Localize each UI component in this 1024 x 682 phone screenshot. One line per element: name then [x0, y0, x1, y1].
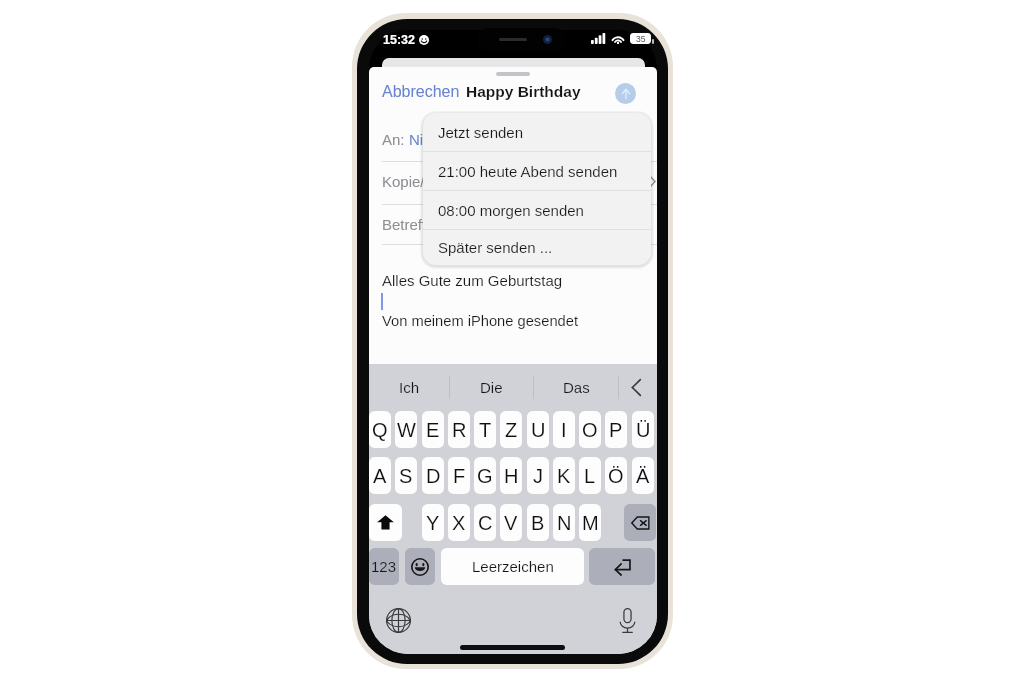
staticText: Später senden ...	[438, 239, 553, 256]
button[interactable]: Rückgängig	[619, 364, 657, 411]
button[interactable]: I	[553, 411, 575, 448]
staticText: Ich	[399, 379, 420, 396]
staticText: V	[504, 512, 518, 534]
button[interactable]: M	[579, 504, 601, 541]
staticText: Von meinem iPhone gesendet	[382, 313, 578, 329]
button[interactable]: P	[605, 411, 627, 448]
button[interactable]: G	[474, 457, 496, 494]
staticText: N	[557, 512, 572, 534]
staticText: F	[453, 465, 466, 487]
staticText: Happy Birthday	[435, 216, 538, 233]
button[interactable]: Diktieren	[614, 607, 640, 633]
staticText: H	[504, 465, 519, 487]
staticText: Happy Birthday	[466, 83, 581, 100]
staticText: I	[561, 419, 567, 441]
staticText: Jetzt senden	[438, 124, 524, 141]
button[interactable]: Ä	[632, 457, 654, 494]
button[interactable]: D	[422, 457, 444, 494]
button[interactable]: 21:00 heute Abend senden	[423, 152, 651, 190]
staticText: Z	[505, 419, 518, 441]
staticText: Y	[426, 512, 440, 534]
staticText: Ü	[636, 419, 651, 441]
button[interactable]: 08:00 morgen senden	[423, 191, 651, 229]
button[interactable]: 123	[369, 548, 399, 585]
button[interactable]: Leerzeichen	[441, 548, 584, 585]
staticText: O	[582, 419, 598, 441]
staticText: M	[582, 512, 599, 534]
button[interactable]: E	[422, 411, 444, 448]
button[interactable]: O	[579, 411, 601, 448]
button[interactable]: K	[553, 457, 575, 494]
button[interactable]: Emoji	[405, 548, 435, 585]
staticText: 123	[371, 558, 397, 575]
staticText: Das	[563, 379, 590, 396]
staticText: X	[452, 512, 466, 534]
staticText: Leerzeichen	[472, 558, 554, 575]
button[interactable]: L	[579, 457, 601, 494]
button[interactable]: Eingabetaste	[589, 548, 655, 585]
button[interactable]: H	[500, 457, 522, 494]
button[interactable]: Ö	[605, 457, 627, 494]
button[interactable]: F	[448, 457, 470, 494]
staticText: S	[399, 465, 413, 487]
staticText: Ä	[636, 465, 650, 487]
button[interactable]: B	[527, 504, 549, 541]
staticText: W	[397, 419, 416, 441]
button[interactable]: Umschalttaste	[369, 504, 402, 541]
staticText: Nils Mustermann	[409, 131, 522, 148]
button[interactable]: N	[553, 504, 575, 541]
button[interactable]: Das	[534, 364, 618, 411]
staticText: Q	[372, 419, 388, 441]
button[interactable]: Senden	[615, 83, 636, 104]
button[interactable]: U	[527, 411, 549, 448]
button[interactable]: A	[369, 457, 391, 494]
staticText: D	[426, 465, 441, 487]
staticText: A	[373, 465, 387, 487]
staticText: C	[478, 512, 493, 534]
staticText: Alles Gute zum Geburtstag	[382, 272, 563, 289]
staticText: G	[477, 465, 493, 487]
button[interactable]: X	[448, 504, 470, 541]
staticText: P	[609, 419, 623, 441]
staticText: An:	[382, 131, 409, 148]
staticText: 15:32	[383, 33, 415, 47]
button[interactable]: C	[474, 504, 496, 541]
button[interactable]: V	[500, 504, 522, 541]
staticText: R	[452, 419, 467, 441]
button[interactable]: R	[448, 411, 470, 448]
button[interactable]: Abbrechen	[382, 83, 460, 101]
button[interactable]: Ü	[632, 411, 654, 448]
button[interactable]: S	[395, 457, 417, 494]
staticText: 35	[636, 34, 646, 43]
staticText: K	[557, 465, 571, 487]
button[interactable]: Jetzt senden	[423, 113, 651, 151]
button[interactable]: Löschen	[624, 504, 656, 541]
staticText: B	[531, 512, 545, 534]
button[interactable]: Die	[450, 364, 533, 411]
button[interactable]: Z	[500, 411, 522, 448]
button[interactable]: T	[474, 411, 496, 448]
staticText: U	[531, 419, 546, 441]
staticText: Kopie/Bcc, Von:	[382, 173, 493, 190]
staticText: 08:00 morgen senden	[438, 202, 584, 219]
staticText: Die	[480, 379, 503, 396]
staticText: J	[533, 465, 543, 487]
button[interactable]: Später senden ...	[423, 230, 651, 265]
button[interactable]: Q	[369, 411, 391, 448]
staticText: L	[584, 465, 596, 487]
button[interactable]: Ich	[369, 364, 449, 411]
button[interactable]: Y	[422, 504, 444, 541]
button[interactable]: W	[395, 411, 417, 448]
staticText: Ö	[608, 465, 624, 487]
staticText: 21:00 heute Abend senden	[438, 163, 618, 180]
staticText: E	[426, 419, 440, 441]
button[interactable]: J	[527, 457, 549, 494]
staticText: Abbrechen	[382, 83, 460, 101]
staticText: Betreff:	[382, 216, 435, 233]
button[interactable]: Tastatur wechseln	[385, 607, 411, 633]
staticText: T	[479, 419, 492, 441]
